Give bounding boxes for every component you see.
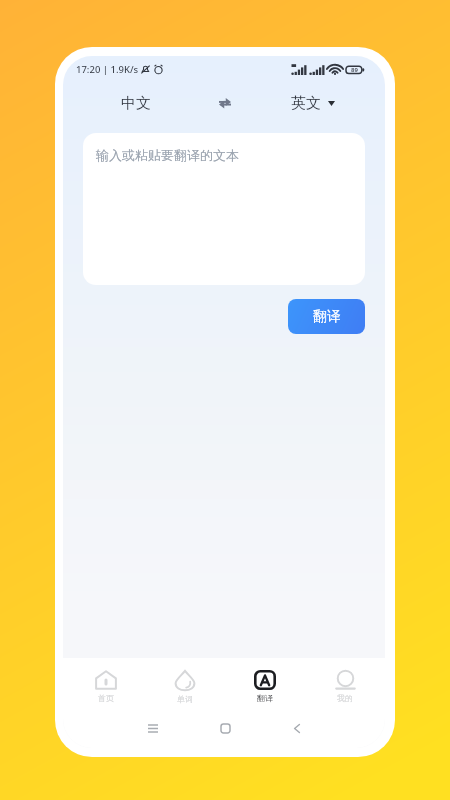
staticText: 单词 xyxy=(177,694,193,704)
staticText: 英文 xyxy=(291,94,321,113)
staticText: 翻译 xyxy=(313,308,341,326)
staticText: 中文 xyxy=(121,94,151,113)
button[interactable]: 首页 xyxy=(66,670,145,708)
button[interactable]: Home xyxy=(189,708,261,748)
staticText: 输入或粘贴要翻译的文本 xyxy=(96,147,239,163)
button[interactable]: 单词 xyxy=(145,670,225,708)
button[interactable]: 翻译 xyxy=(225,670,305,708)
staticText: 89 xyxy=(351,66,358,74)
button[interactable]: 英文 xyxy=(288,82,338,124)
button[interactable]: 中文 xyxy=(111,82,161,124)
button[interactable]: 输入或粘贴要翻译的文本 xyxy=(83,133,365,285)
button[interactable]: Back xyxy=(261,708,333,748)
staticText: 首页 xyxy=(98,693,114,703)
button[interactable]: 我的 xyxy=(305,670,385,708)
staticText: 17:20 | 1.9K/s xyxy=(76,63,139,76)
button[interactable]: Swap languages xyxy=(210,88,240,118)
button[interactable]: Recents xyxy=(117,708,189,748)
button[interactable]: 翻译 xyxy=(288,299,365,334)
staticText: 翻译 xyxy=(257,693,273,703)
staticText: 我的 xyxy=(337,693,353,703)
